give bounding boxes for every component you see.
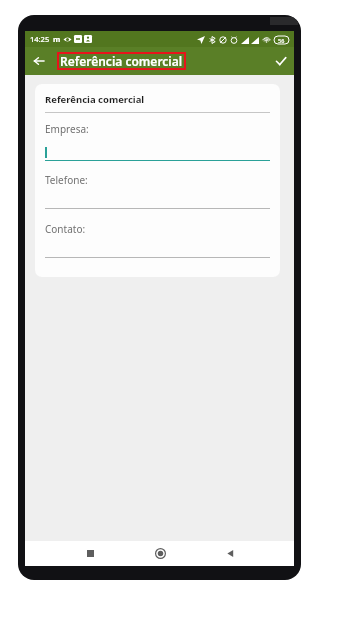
button[interactable]: Empresa: [45, 122, 270, 136]
button[interactable]: Recent apps [55, 541, 125, 566]
button[interactable]: Home [125, 541, 195, 566]
button[interactable]: Back [29, 51, 49, 71]
staticText: Telefone: [45, 173, 88, 187]
staticText: 56 [278, 37, 285, 44]
staticText: Referência comercial [60, 53, 183, 69]
staticText: 14:25 [30, 34, 50, 44]
staticText: Empresa: [45, 122, 89, 136]
staticText: Contato: [45, 222, 86, 236]
staticText: m [53, 34, 61, 44]
button[interactable]: Contato: [45, 222, 270, 236]
button[interactable]: Back [195, 541, 265, 566]
button[interactable]: Save [271, 51, 291, 71]
staticText: Referência comercial [45, 93, 145, 106]
button[interactable]: Telefone: [45, 173, 270, 187]
